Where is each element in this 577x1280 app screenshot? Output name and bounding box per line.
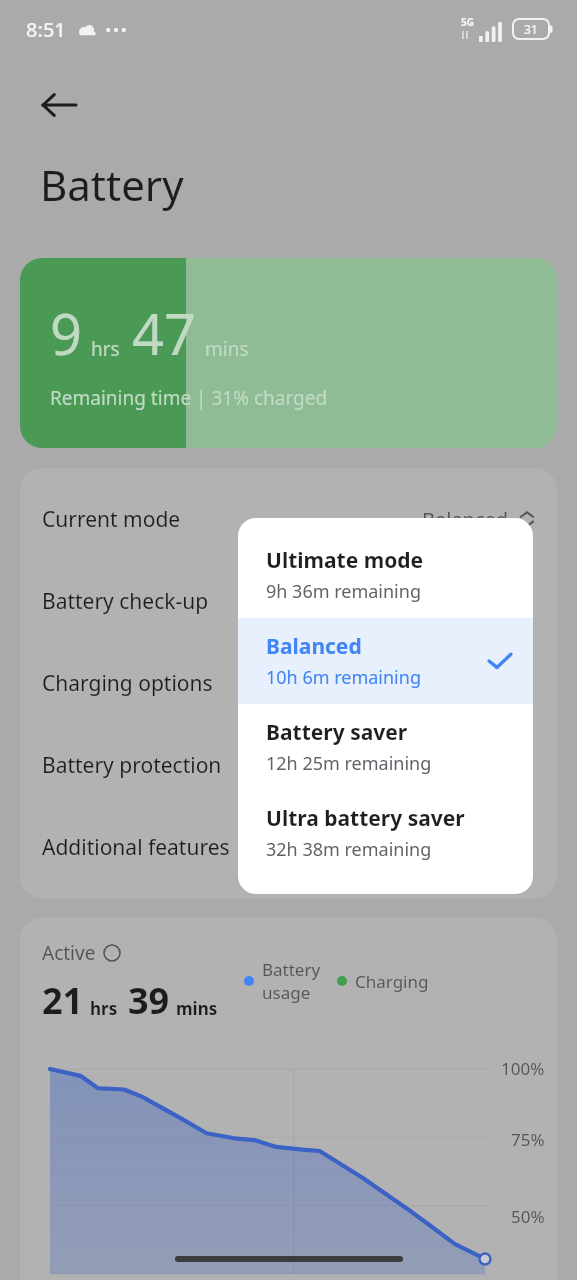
staticText: Battery: [40, 156, 184, 213]
button[interactable]: Ultimate mode: [238, 532, 533, 618]
staticText: 39: [128, 976, 170, 1025]
staticText: 75%: [511, 1128, 545, 1151]
staticText: Battery check-up: [42, 587, 209, 616]
staticText: 12h 25m remaining: [266, 751, 432, 776]
button[interactable]: Battery saver: [238, 704, 533, 790]
staticText: 9: [50, 295, 83, 371]
staticText: Current mode: [42, 505, 181, 534]
staticText: hrs: [91, 336, 120, 362]
button[interactable]: Battery protection: [20, 724, 557, 806]
staticText: Ultimate mode: [266, 546, 424, 575]
button[interactable]: Charging options: [20, 642, 557, 724]
staticText: Battery saver: [266, 718, 408, 747]
staticText: 47: [132, 295, 197, 371]
button[interactable]: Ultra battery saver: [238, 790, 533, 876]
staticText: Active: [42, 940, 96, 966]
button[interactable]: Balanced: [238, 618, 533, 704]
staticText: mins: [176, 997, 218, 1020]
staticText: Remaining time | 31% charged: [50, 385, 328, 411]
staticText: 50%: [511, 1205, 545, 1228]
staticText: 31: [524, 21, 538, 37]
button[interactable]: Current mode: [20, 478, 557, 560]
staticText: Additional features: [42, 833, 230, 862]
staticText: mins: [205, 336, 249, 362]
staticText: Balanced: [266, 632, 362, 661]
staticText: Balanced: [422, 506, 509, 533]
staticText: Ultra battery saver: [266, 804, 465, 833]
staticText: Charging: [355, 970, 429, 993]
staticText: 8:51: [26, 16, 66, 43]
button[interactable]: Back: [30, 76, 88, 134]
staticText: 9h 36m remaining: [266, 579, 421, 604]
staticText: 100%: [501, 1057, 545, 1080]
staticText: 5G: [461, 15, 474, 29]
staticText: Charging options: [42, 669, 213, 698]
staticText: Battery protection: [42, 751, 222, 780]
button[interactable]: Battery check-up: [20, 560, 557, 642]
button[interactable]: 9: [20, 258, 557, 448]
staticText: 10h 6m remaining: [266, 665, 421, 690]
staticText: 21: [42, 976, 84, 1025]
button[interactable]: Additional features: [20, 806, 557, 888]
staticText: 32h 38m remaining: [266, 837, 432, 862]
staticText: hrs: [90, 997, 118, 1020]
staticText: Battery usage: [262, 958, 321, 1004]
